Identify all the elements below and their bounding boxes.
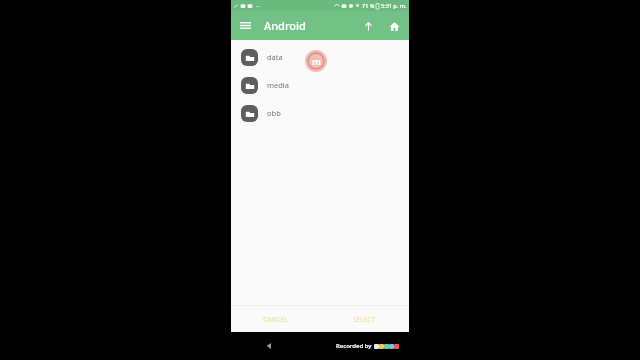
staticText: m (312, 55, 321, 67)
button[interactable]: data (231, 43, 409, 71)
button[interactable]: Go to home directory (381, 13, 407, 39)
staticText: Android (264, 18, 306, 33)
button[interactable]: Open navigation menu (231, 11, 260, 40)
staticText: media (267, 80, 289, 90)
staticText: 71 % (362, 2, 375, 9)
staticText: Recorded by (336, 342, 372, 350)
staticText: CANCEL (263, 315, 288, 324)
button[interactable]: obb (231, 99, 409, 127)
button[interactable]: SELECT (320, 306, 409, 332)
button[interactable]: Back (261, 338, 277, 354)
staticText: ... (256, 2, 261, 9)
button[interactable]: media (231, 71, 409, 99)
staticText: obb (267, 108, 281, 118)
staticText: SELECT (353, 315, 376, 324)
button[interactable]: CANCEL (231, 306, 320, 332)
button[interactable]: Navigate up (355, 13, 381, 39)
staticText: 5:31 p. m. (381, 2, 407, 9)
staticText: data (267, 52, 283, 62)
